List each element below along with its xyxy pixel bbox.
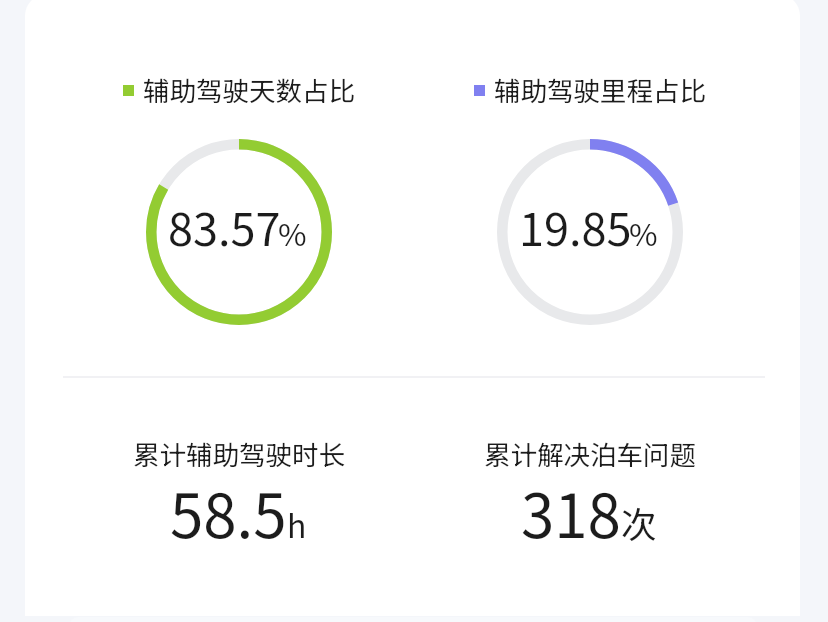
staticText: %	[278, 210, 307, 255]
button[interactable]: 辅助驾驶里程占比 19.85%	[497, 139, 683, 325]
staticText: 辅助驾驶天数占比	[143, 70, 355, 108]
staticText: 次	[621, 496, 658, 548]
staticText: 累计解决泊车问题	[484, 434, 696, 472]
staticText: 19.85	[519, 194, 632, 259]
staticText: 辅助驾驶里程占比	[494, 70, 706, 108]
staticText: h	[287, 501, 307, 547]
staticText: 58.5	[170, 468, 287, 555]
button[interactable]: 辅助驾驶天数占比 83.57%	[146, 139, 332, 325]
staticText: 83.57	[168, 194, 281, 259]
button[interactable]: 辅助驾驶天数占比	[63, 70, 414, 108]
button[interactable]: 累计解决泊车问题	[414, 434, 765, 559]
staticText: %	[629, 210, 658, 255]
button[interactable]: 累计辅助驾驶时长	[63, 434, 414, 559]
button[interactable]: 辅助驾驶天数占比	[25, 0, 800, 616]
staticText: 318	[521, 468, 621, 555]
button[interactable]: 辅助驾驶里程占比	[414, 70, 765, 108]
staticText: 累计辅助驾驶时长	[133, 434, 345, 472]
